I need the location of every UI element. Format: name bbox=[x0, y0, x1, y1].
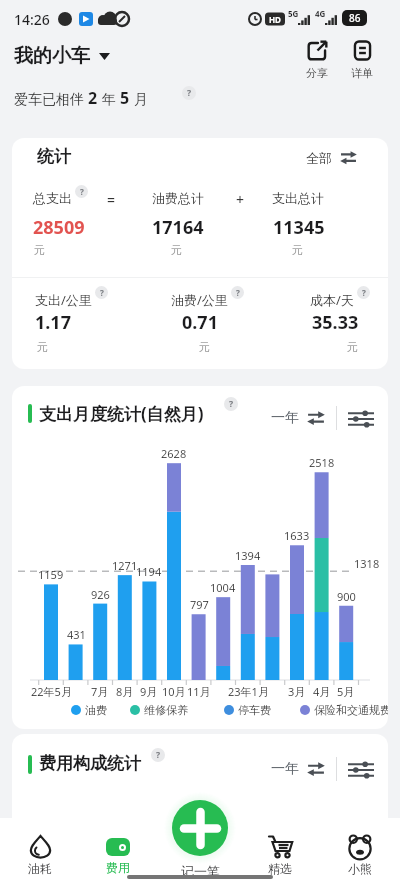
button[interactable] bbox=[348, 411, 374, 427]
staticText: 14:26 bbox=[14, 10, 50, 29]
staticText: 5 bbox=[120, 87, 130, 109]
button[interactable]: 一年 bbox=[271, 409, 325, 427]
staticText: 支出月度统计(自然月) bbox=[39, 402, 204, 425]
staticText: 一年 bbox=[271, 760, 299, 778]
staticText: 3月 bbox=[288, 684, 306, 699]
staticText: 油费/公里 bbox=[171, 291, 228, 309]
staticText: 费用 bbox=[106, 860, 130, 875]
staticText: 2518 bbox=[309, 455, 335, 470]
staticText: ? bbox=[236, 287, 240, 298]
button[interactable]: 一年 bbox=[271, 760, 325, 778]
staticText: 精选 bbox=[268, 861, 292, 876]
button[interactable]: 小熊 bbox=[336, 833, 384, 876]
staticText: 0.71 bbox=[182, 310, 218, 335]
staticText: 1271 bbox=[112, 558, 138, 573]
staticText: 月 bbox=[130, 89, 148, 108]
button[interactable] bbox=[348, 762, 374, 778]
staticText: 926 bbox=[91, 587, 110, 602]
staticText: 9月 bbox=[140, 684, 158, 699]
staticText: 4G bbox=[315, 8, 326, 19]
staticText: 431 bbox=[67, 627, 86, 642]
staticText: 1004 bbox=[210, 580, 236, 595]
staticText: ? bbox=[100, 287, 104, 298]
staticText: 1633 bbox=[284, 528, 310, 543]
staticText: 5G bbox=[288, 8, 299, 19]
staticText: 元 bbox=[171, 243, 182, 257]
staticText: 23年1月 bbox=[228, 684, 269, 699]
staticText: 分享 bbox=[306, 66, 328, 80]
staticText: 8月 bbox=[116, 684, 134, 699]
staticText: 35.33 bbox=[312, 310, 359, 335]
staticText: 900 bbox=[337, 589, 356, 604]
staticText: 2628 bbox=[161, 446, 187, 461]
staticText: 28509 bbox=[33, 215, 85, 240]
staticText: 元 bbox=[37, 340, 48, 354]
staticText: 797 bbox=[190, 597, 209, 612]
staticText: 1.17 bbox=[35, 310, 71, 335]
staticText: 统计 bbox=[37, 146, 71, 167]
button[interactable] bbox=[172, 800, 228, 856]
staticText: 成本/天 bbox=[310, 291, 354, 309]
staticText: 总支出 bbox=[33, 190, 72, 206]
staticText: 1159 bbox=[38, 567, 64, 582]
staticText: 11月 bbox=[187, 684, 211, 699]
staticText: + bbox=[236, 190, 245, 209]
staticText: 元 bbox=[199, 340, 210, 354]
staticText: 记一笔 bbox=[181, 863, 220, 879]
button[interactable]: 详单 bbox=[350, 40, 374, 80]
staticText: 1194 bbox=[136, 564, 162, 579]
staticText: ? bbox=[187, 87, 192, 99]
staticText: ? bbox=[156, 749, 161, 761]
staticText: 全部 bbox=[306, 150, 332, 166]
staticText: = bbox=[107, 190, 116, 209]
staticText: 维修保养 bbox=[144, 703, 188, 717]
staticText: 元 bbox=[34, 243, 45, 257]
staticText: 油耗 bbox=[28, 861, 52, 876]
button[interactable]: 我的小车 bbox=[14, 44, 110, 68]
staticText: 停车费 bbox=[238, 703, 271, 717]
staticText: 爱车已相伴 bbox=[14, 89, 88, 108]
staticText: 费用构成统计 bbox=[39, 753, 141, 774]
staticText: 详单 bbox=[351, 66, 373, 80]
staticText: 2 bbox=[88, 87, 98, 109]
staticText: 7月 bbox=[91, 684, 109, 699]
staticText: 油费总计 bbox=[152, 190, 204, 206]
staticText: 小熊 bbox=[348, 861, 372, 876]
staticText: 年 bbox=[98, 89, 120, 108]
staticText: 10月 bbox=[162, 684, 186, 699]
staticText: ? bbox=[80, 186, 84, 197]
staticText: 元 bbox=[292, 243, 303, 257]
staticText: 元 bbox=[347, 340, 358, 354]
staticText: 17164 bbox=[152, 215, 204, 240]
button[interactable]: 费用 bbox=[94, 838, 142, 875]
staticText: 86 bbox=[349, 11, 361, 25]
button[interactable]: 分享 bbox=[305, 40, 329, 80]
staticText: ? bbox=[362, 287, 366, 298]
staticText: 油费 bbox=[85, 703, 107, 717]
staticText: ? bbox=[229, 398, 234, 410]
button[interactable]: 全部 bbox=[306, 149, 357, 166]
staticText: 我的小车 bbox=[14, 44, 90, 68]
staticText: 5月 bbox=[337, 684, 355, 699]
staticText: HD bbox=[269, 14, 281, 25]
staticText: 保险和交通规费 bbox=[314, 703, 388, 717]
staticText: 一年 bbox=[271, 409, 299, 427]
staticText: 1318 bbox=[354, 556, 380, 571]
staticText: 支出总计 bbox=[272, 190, 324, 206]
staticText: 22年5月 bbox=[31, 684, 72, 699]
button[interactable]: 油耗 bbox=[16, 835, 64, 876]
button[interactable]: 精选 bbox=[256, 834, 304, 876]
staticText: 11345 bbox=[273, 215, 325, 240]
staticText: 1394 bbox=[235, 548, 261, 563]
staticText: 4月 bbox=[313, 684, 331, 699]
staticText: 支出/公里 bbox=[35, 291, 92, 309]
